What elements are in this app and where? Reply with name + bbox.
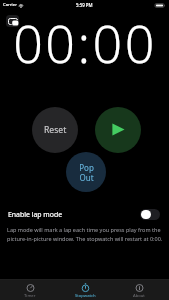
staticText: Pop Out (79, 162, 94, 183)
button[interactable]: Enable lap mode (0, 206, 169, 222)
staticText: Timer (24, 293, 36, 299)
button[interactable]: Reset (32, 107, 78, 153)
staticText: Lap mode will mark a lap each time you p… (7, 226, 164, 243)
staticText: 00:00 (13, 7, 157, 78)
button[interactable]: Timer (5, 280, 55, 300)
button[interactable]: About (114, 280, 164, 300)
staticText: 5:59 PM (76, 2, 93, 8)
staticText: Stopwatch (75, 293, 96, 299)
button[interactable]: Picture in picture (6, 15, 19, 27)
staticText: Carrier (3, 2, 17, 8)
button[interactable]: Start (95, 107, 141, 153)
button[interactable]: Stopwatch (60, 280, 110, 300)
staticText: About (133, 293, 145, 299)
staticText: Reset (44, 124, 67, 136)
button[interactable]: Pop Out (66, 152, 106, 192)
staticText: Enable lap mode (8, 210, 63, 219)
